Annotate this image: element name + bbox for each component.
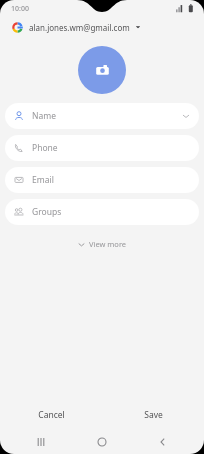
staticText: View more — [89, 239, 127, 249]
staticText: Phone — [32, 142, 190, 154]
button[interactable]: View more — [72, 236, 133, 252]
button[interactable]: Save — [102, 400, 204, 430]
button[interactable]: Add contact photo — [78, 46, 126, 94]
button[interactable]: Home — [82, 430, 122, 454]
staticText: Email — [32, 174, 190, 186]
staticText: 10:00 — [11, 4, 29, 14]
button[interactable]: Groups — [5, 199, 199, 225]
staticText: Name — [32, 110, 182, 122]
staticText: Save — [144, 409, 163, 421]
staticText: alan.jones.wm@gmail.com — [29, 22, 130, 33]
staticText: Groups — [32, 206, 190, 218]
staticText: Cancel — [38, 409, 65, 421]
button[interactable]: alan.jones.wm@gmail.com — [0, 17, 204, 37]
button[interactable]: Name — [5, 103, 199, 129]
button[interactable]: Cancel — [0, 400, 102, 430]
button[interactable]: Phone — [5, 135, 199, 161]
button[interactable]: Back — [143, 430, 183, 454]
button[interactable]: Email — [5, 167, 199, 193]
button[interactable]: Recents — [21, 430, 61, 454]
